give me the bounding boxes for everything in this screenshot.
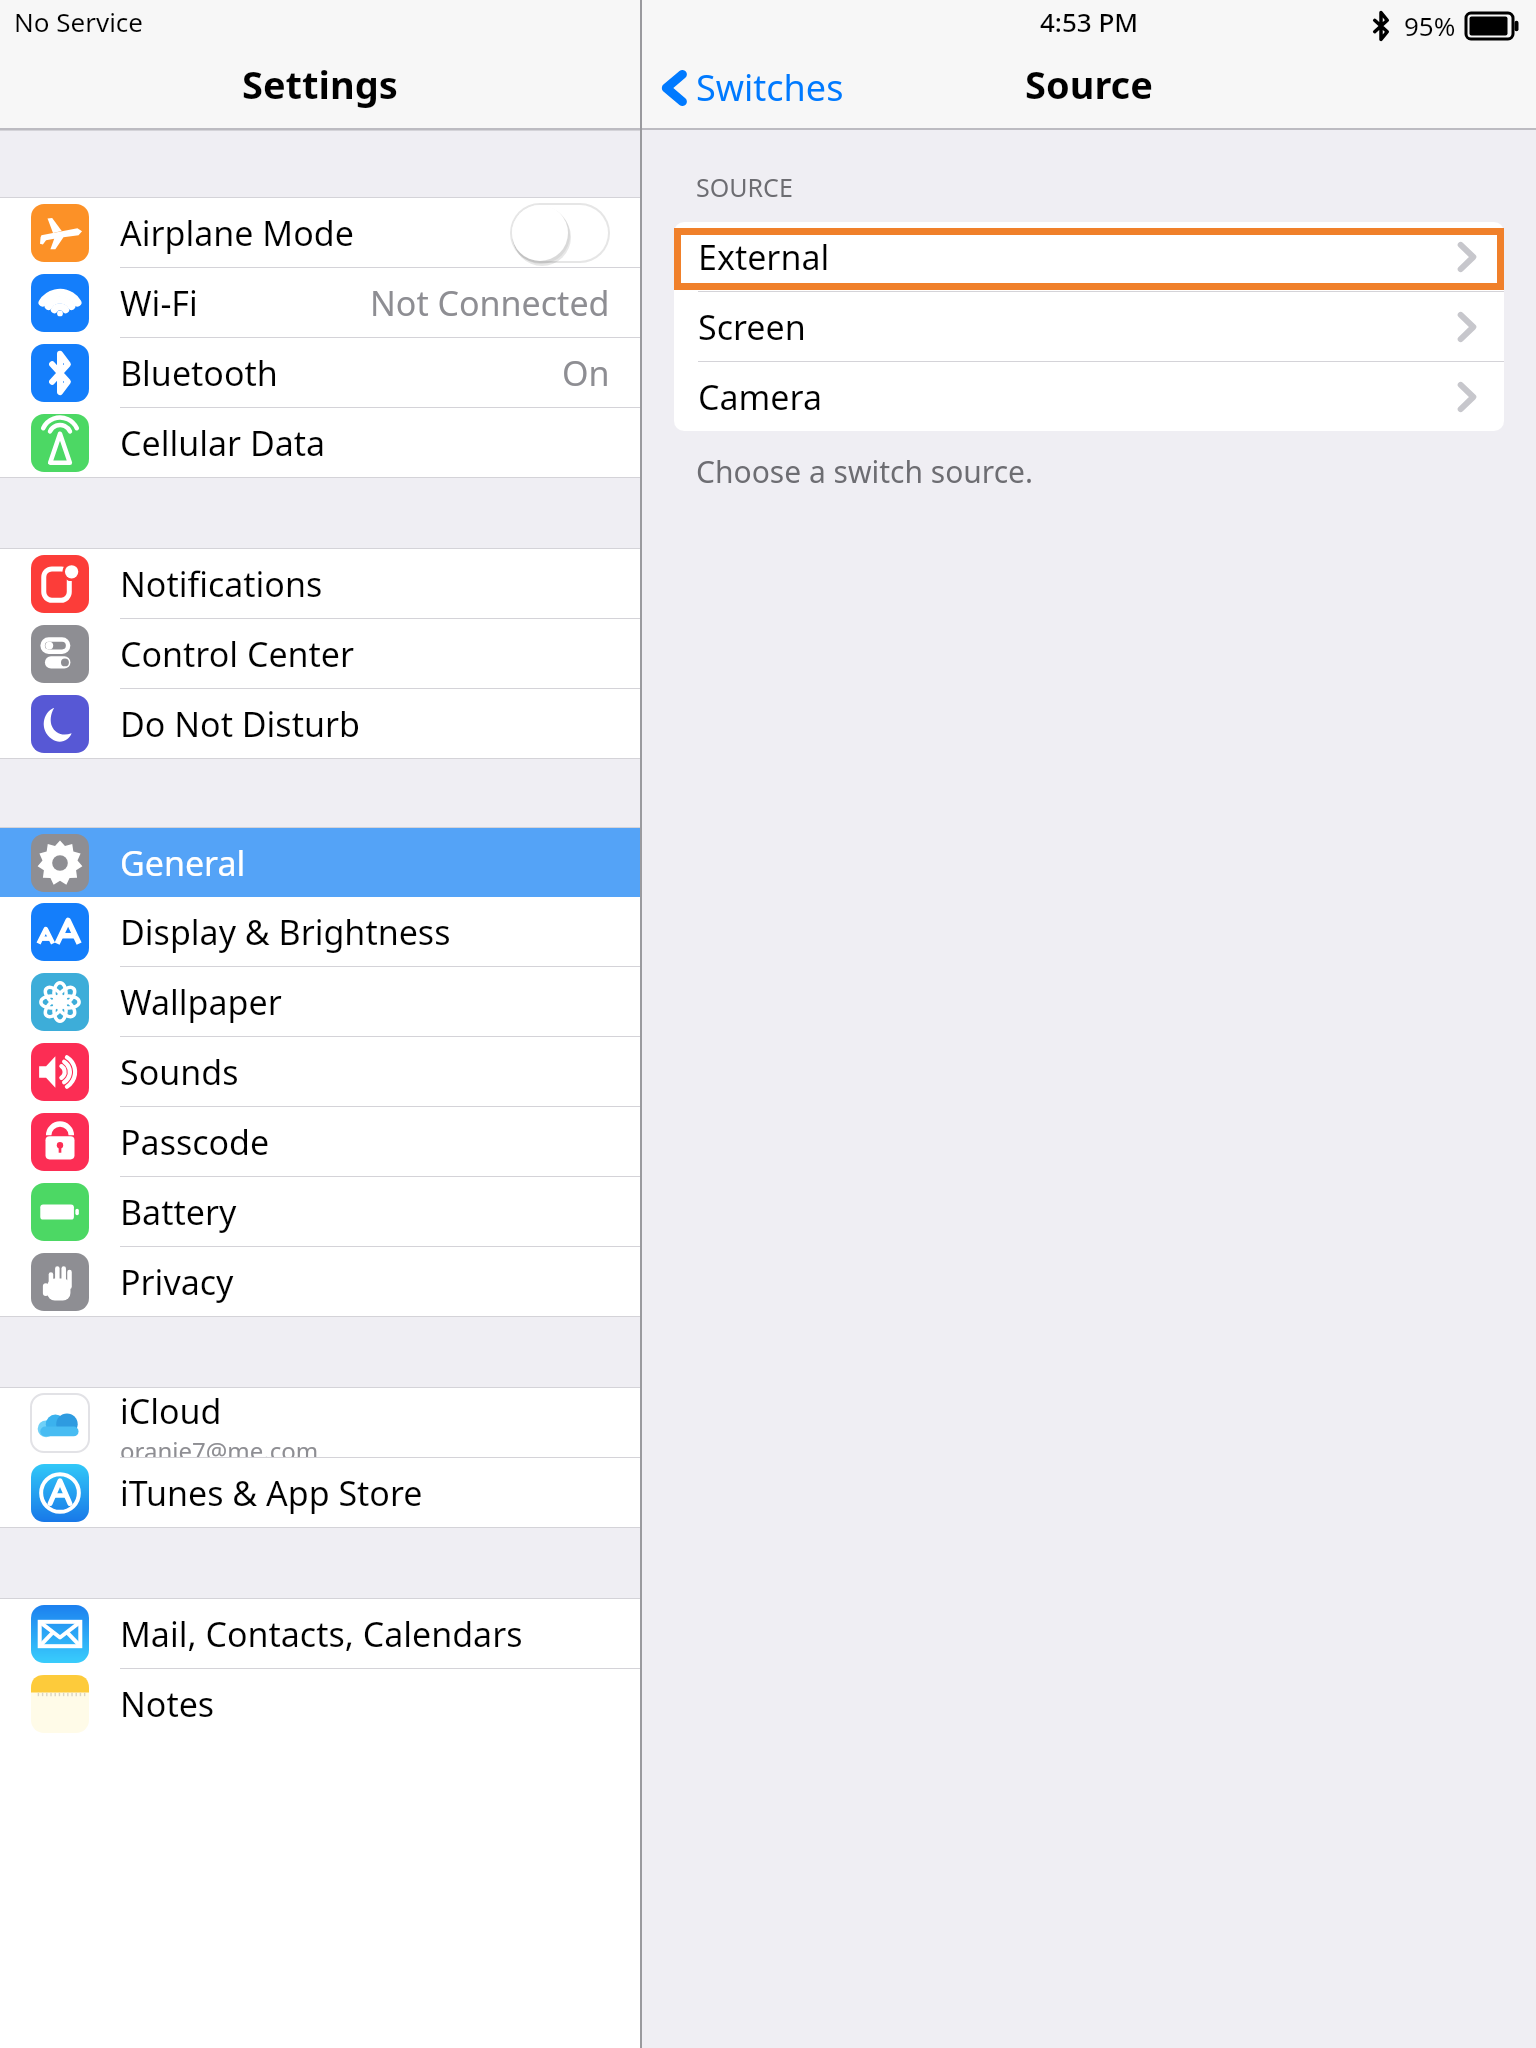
staticText: Airplane Mode	[120, 210, 354, 256]
staticText: Display & Brightness	[120, 909, 451, 955]
button[interactable]: Wallpaper	[0, 967, 640, 1036]
staticText: Not Connected	[370, 280, 610, 326]
staticText: External	[698, 234, 830, 280]
staticText: No Service	[14, 4, 143, 39]
staticText: Wallpaper	[120, 979, 282, 1025]
button[interactable]: Camera	[674, 362, 1504, 431]
staticText: Control Center	[120, 631, 355, 677]
staticText: Privacy	[120, 1259, 234, 1305]
button[interactable]: Airplane Mode	[0, 198, 640, 267]
button[interactable]: Wi-Fi	[0, 268, 640, 337]
staticText: Cellular Data	[120, 420, 326, 466]
staticText: Screen	[698, 304, 806, 350]
staticText: Switches	[696, 63, 844, 112]
button[interactable]: Sounds	[0, 1037, 640, 1106]
button[interactable]: Cellular Data	[0, 408, 640, 477]
staticText: 4:53 PM	[1040, 4, 1139, 39]
button[interactable]: iTunes & App Store	[0, 1458, 640, 1527]
staticText: iTunes & App Store	[120, 1470, 423, 1516]
button[interactable]: General	[0, 828, 640, 897]
staticText: 95%	[1404, 8, 1456, 43]
staticText: Passcode	[120, 1119, 270, 1165]
staticText: Settings	[242, 58, 398, 110]
staticText: Source	[1025, 58, 1153, 110]
button[interactable]: Screen	[674, 292, 1504, 361]
staticText: Mail, Contacts, Calendars	[120, 1611, 523, 1657]
button[interactable]: Mail, Contacts, Calendars	[0, 1599, 640, 1668]
staticText: On	[562, 350, 610, 396]
button[interactable]: Display & Brightness	[0, 897, 640, 966]
button[interactable]: Passcode	[0, 1107, 640, 1176]
staticText: Notifications	[120, 561, 323, 607]
staticText: Camera	[698, 374, 822, 420]
button[interactable]: Do Not Disturb	[0, 689, 640, 758]
staticText: Wi-Fi	[120, 280, 198, 326]
staticText: SOURCE	[696, 170, 793, 204]
staticText: Bluetooth	[120, 350, 278, 396]
staticText: Sounds	[120, 1049, 239, 1095]
staticText: Choose a switch source.	[696, 451, 1033, 492]
staticText: oranje7@me.com	[120, 1434, 319, 1457]
staticText: Do Not Disturb	[120, 701, 360, 747]
staticText: Notes	[120, 1681, 215, 1727]
button[interactable]: iCloud	[0, 1388, 640, 1457]
button[interactable]: External	[674, 222, 1504, 291]
button[interactable]: Notifications	[0, 549, 640, 618]
button[interactable]: Control Center	[0, 619, 640, 688]
button[interactable]: Switches	[652, 55, 854, 120]
button[interactable]: Bluetooth	[0, 338, 640, 407]
staticText: iCloud	[120, 1388, 222, 1434]
button[interactable]: Notes	[0, 1669, 640, 1738]
staticText: General	[120, 840, 246, 886]
button[interactable]: Privacy	[0, 1247, 640, 1316]
staticText: Battery	[120, 1189, 237, 1235]
button[interactable]: Battery	[0, 1177, 640, 1246]
